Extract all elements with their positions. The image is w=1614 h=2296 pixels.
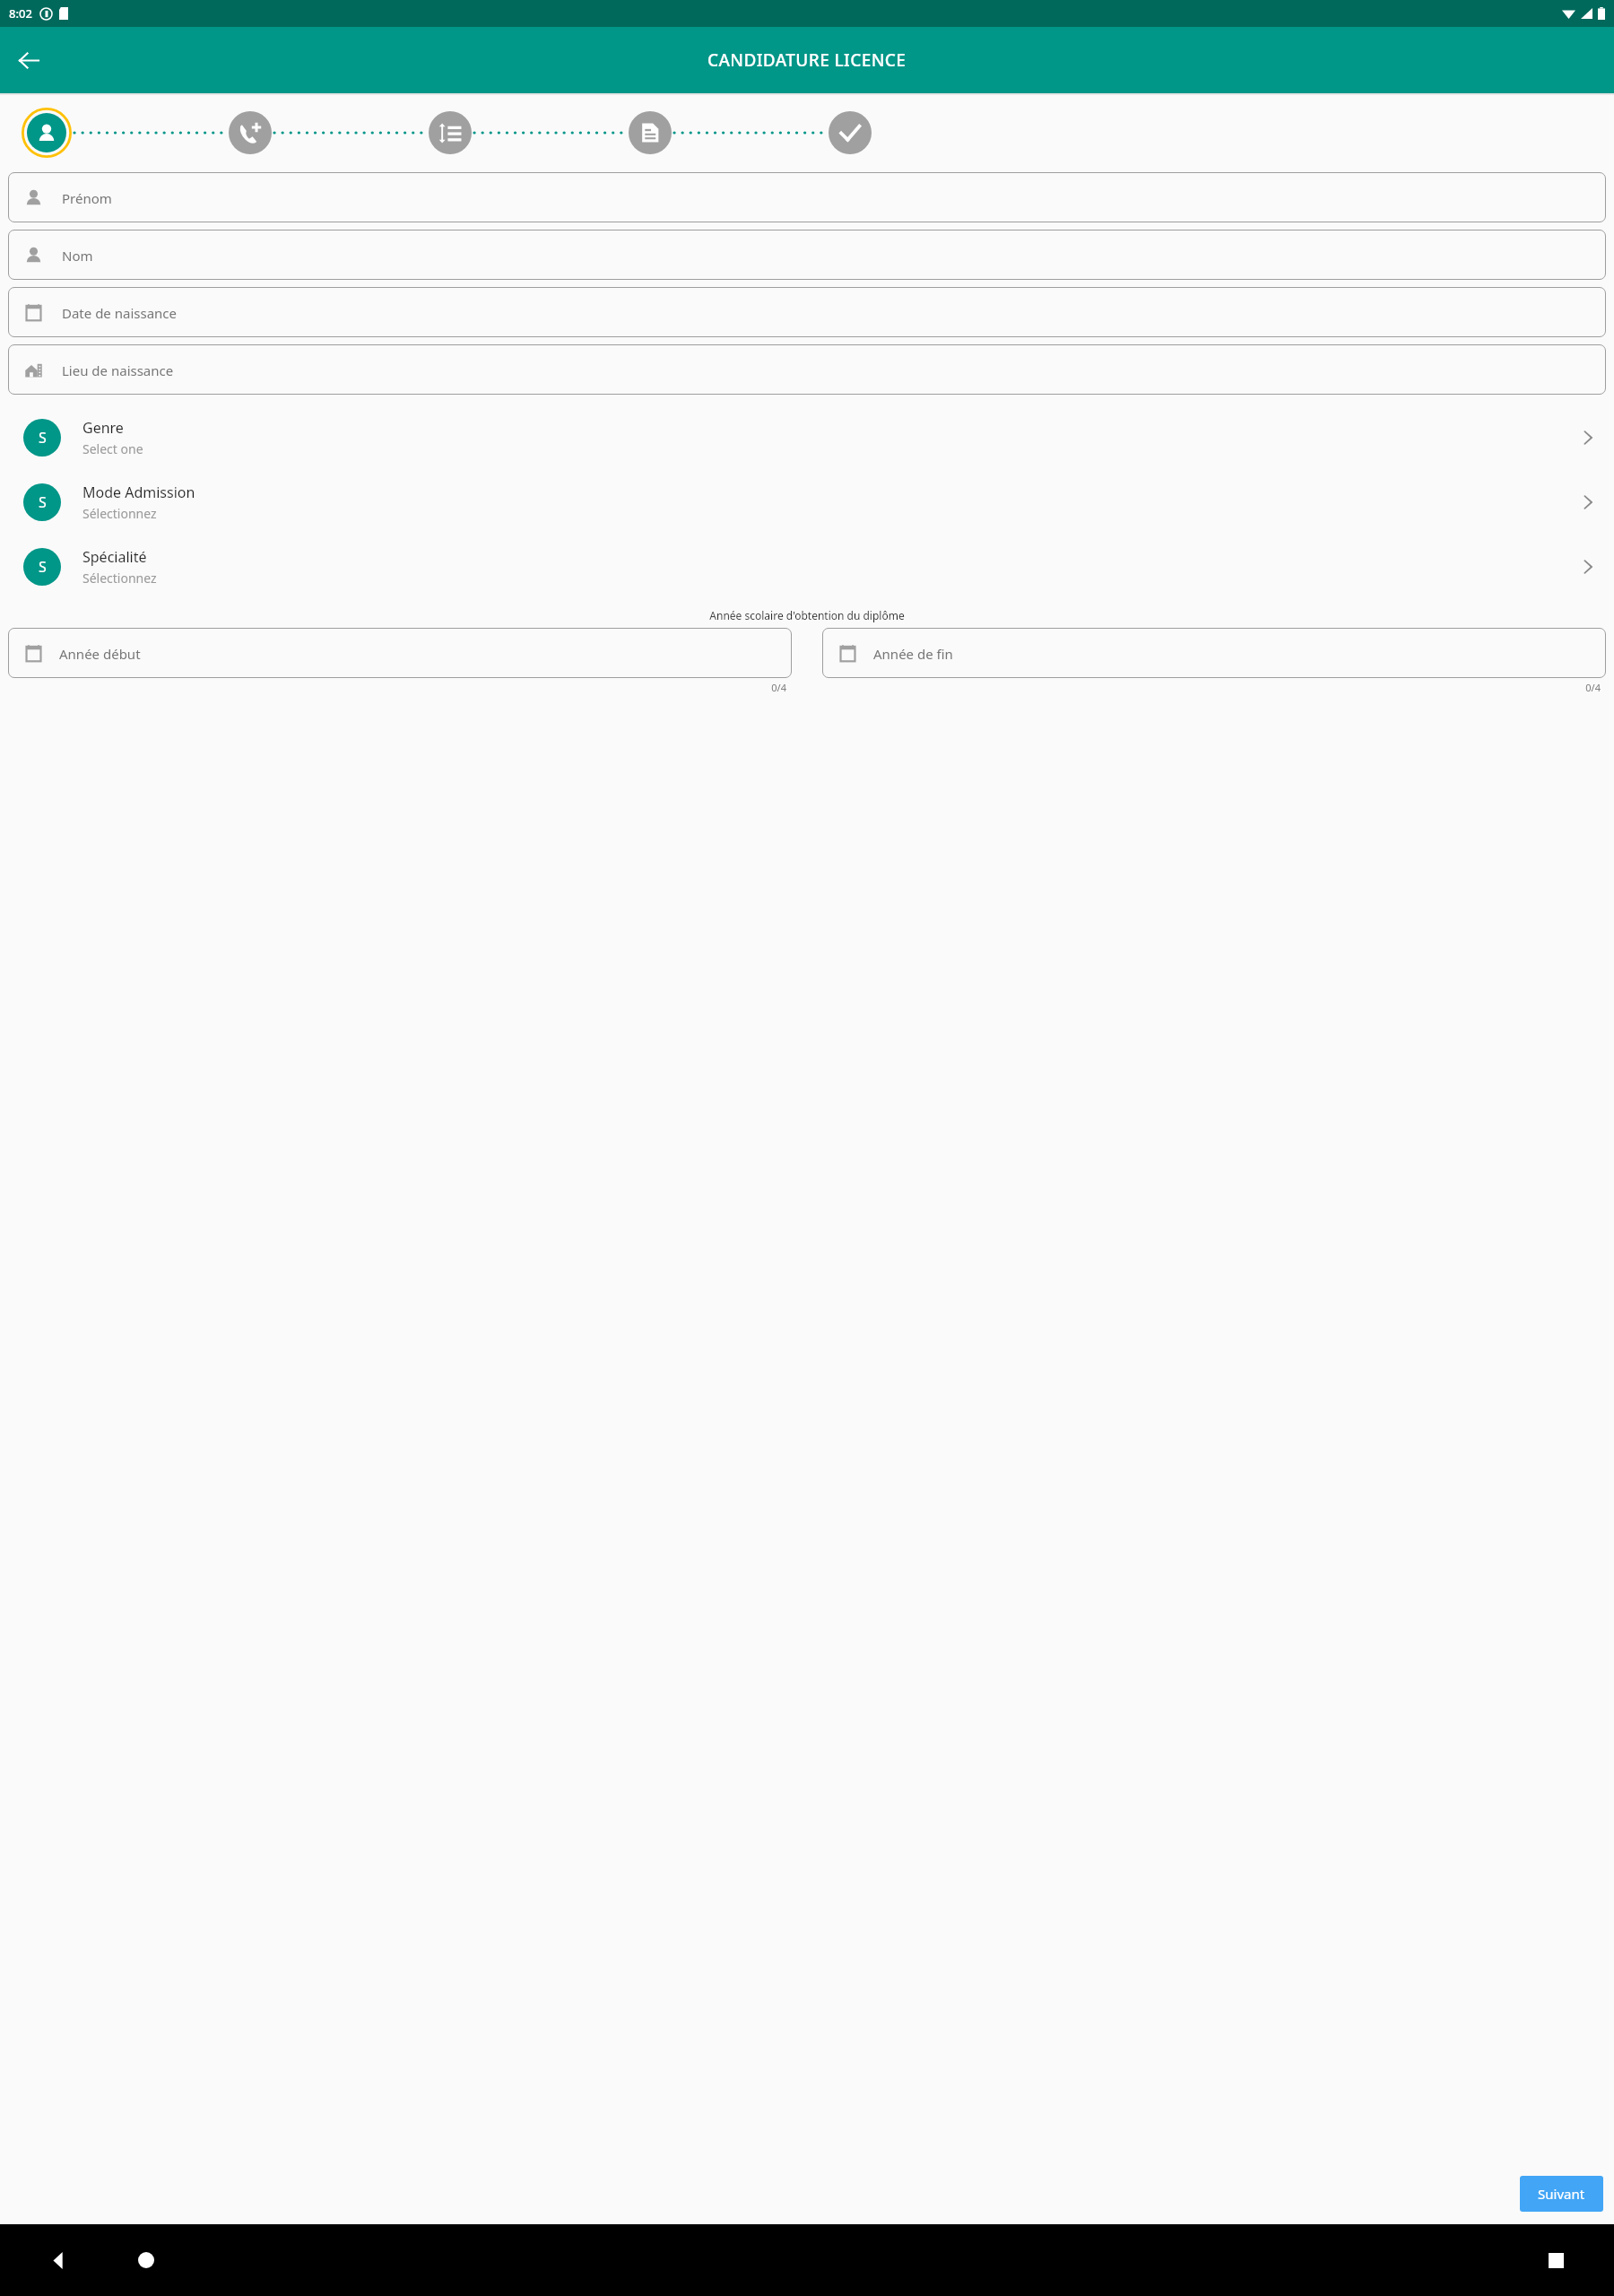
button[interactable]: Suivant <box>1520 2176 1603 2212</box>
button[interactable]: Année début <box>8 628 792 678</box>
staticText: 0/4 <box>0 681 786 694</box>
staticText: Mode Admission <box>82 483 195 502</box>
button[interactable]: S <box>0 535 1614 599</box>
staticText: 0/4 <box>814 681 1601 694</box>
button[interactable]: Back <box>7 39 50 82</box>
button[interactable]: S <box>0 405 1614 470</box>
staticText: Select one <box>82 440 143 457</box>
staticText: Sélectionnez <box>82 570 157 587</box>
staticText: Genre <box>82 418 124 438</box>
button[interactable]: Step <box>829 111 872 154</box>
staticText: Année début <box>59 645 141 663</box>
button[interactable]: Recent apps <box>1533 2238 1578 2283</box>
staticText: Année scolaire d'obtention du diplôme <box>0 608 1614 622</box>
button[interactable]: Lieu de naissance <box>8 344 1606 395</box>
staticText: Date de naissance <box>62 304 177 322</box>
staticText: S <box>39 428 47 448</box>
button[interactable]: Step <box>22 108 72 158</box>
button[interactable]: Home <box>124 2238 169 2283</box>
staticText: Année de fin <box>873 645 953 663</box>
button[interactable]: Step <box>229 111 272 154</box>
button[interactable]: Step <box>429 111 472 154</box>
button[interactable]: Date de naissance <box>8 287 1606 337</box>
staticText: Spécialité <box>82 547 147 567</box>
button[interactable]: Back <box>36 2238 81 2283</box>
button[interactable]: Step <box>629 111 672 154</box>
staticText: Sélectionnez <box>82 505 157 522</box>
staticText: Prénom <box>62 189 112 207</box>
staticText: Lieu de naissance <box>62 361 174 379</box>
button[interactable]: S <box>0 470 1614 535</box>
button[interactable]: Année de fin <box>822 628 1606 678</box>
button[interactable]: Nom <box>8 230 1606 280</box>
staticText: 8:02 <box>9 5 32 22</box>
staticText: Nom <box>62 247 93 265</box>
button[interactable]: Prénom <box>8 172 1606 222</box>
staticText: S <box>39 492 47 512</box>
staticText: Suivant <box>1538 2185 1585 2203</box>
staticText: CANDIDATURE LICENCE <box>707 48 907 72</box>
staticText: S <box>39 557 47 577</box>
